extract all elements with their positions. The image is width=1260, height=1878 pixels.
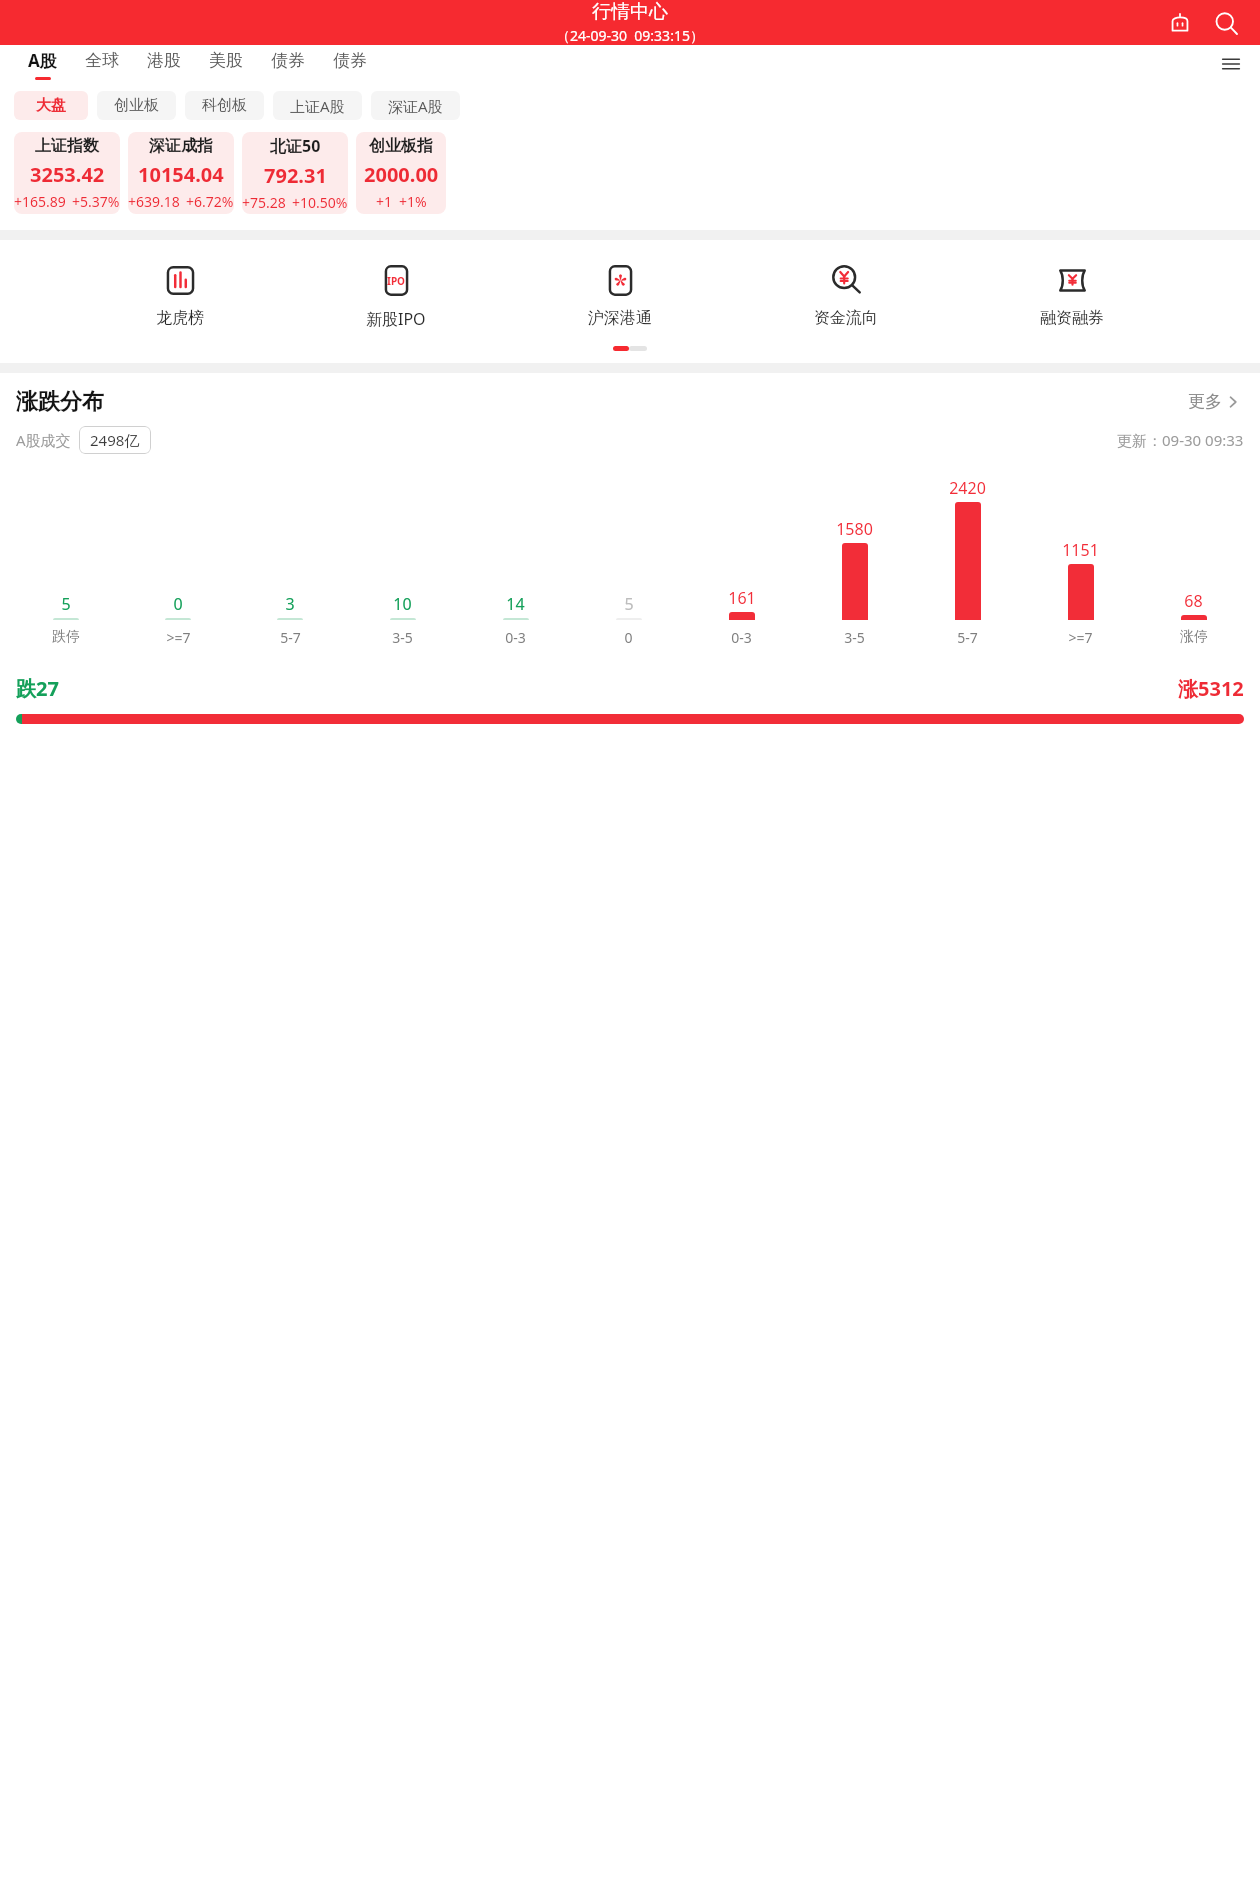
staticText: 更新：09-30 09:33: [1117, 430, 1244, 450]
staticText: 3-5: [392, 628, 413, 647]
staticText: +639.18: [128, 192, 180, 211]
staticText: 龙虎榜: [156, 308, 204, 328]
staticText: 资金流向: [814, 308, 878, 328]
button[interactable]: 上证指数: [14, 132, 120, 214]
staticText: 3-5: [844, 628, 865, 647]
staticText: 涨5312: [1178, 675, 1244, 702]
staticText: 1580: [836, 518, 873, 540]
staticText: 上证A股: [290, 96, 345, 116]
staticText: 2498亿: [90, 430, 140, 450]
staticText: 北证50: [270, 135, 321, 157]
staticText: IPO: [387, 274, 406, 288]
staticText: （24-09-30 09:33:15）: [556, 26, 704, 45]
staticText: +1: [376, 192, 393, 211]
button[interactable]: 债券: [257, 45, 319, 83]
staticText: 0: [624, 628, 633, 647]
button[interactable]: 更多: [1184, 387, 1244, 416]
button[interactable]: 大盘: [14, 91, 88, 120]
staticText: A股成交: [16, 430, 71, 450]
button[interactable]: 美股: [195, 45, 257, 83]
staticText: 沪深港通: [588, 308, 652, 328]
button[interactable]: IPO: [360, 260, 432, 332]
staticText: 创业板指: [369, 136, 433, 156]
staticText: 2000.00: [364, 161, 439, 188]
staticText: 大盘: [36, 96, 66, 115]
staticText: 行情中心: [592, 0, 668, 24]
staticText: 涨停: [1180, 628, 1208, 646]
button[interactable]: 龙虎榜: [150, 260, 210, 330]
staticText: 融资融券: [1040, 308, 1104, 328]
staticText: +75.28: [242, 193, 286, 212]
staticText: >=7: [166, 628, 191, 647]
staticText: 5-7: [280, 628, 301, 647]
staticText: 跌27: [16, 675, 59, 702]
staticText: 0: [173, 593, 183, 615]
staticText: 14: [506, 593, 525, 615]
staticText: 创业板: [114, 96, 159, 115]
staticText: +1%: [399, 192, 427, 211]
staticText: 港股: [147, 50, 181, 71]
staticText: 涨跌分布: [16, 388, 104, 416]
button[interactable]: 债券: [319, 45, 381, 83]
staticText: 5: [624, 593, 634, 615]
button[interactable]: 深证A股: [371, 91, 460, 120]
staticText: 债券: [271, 50, 305, 71]
button[interactable]: 融资融券: [1034, 260, 1110, 330]
staticText: 0-3: [731, 628, 752, 647]
button[interactable]: 创业板: [97, 91, 176, 120]
button[interactable]: 智能助手: [1160, 3, 1200, 43]
staticText: 深证A股: [388, 96, 443, 116]
staticText: 3: [285, 593, 295, 615]
staticText: 10: [393, 593, 412, 615]
staticText: 更多: [1188, 391, 1222, 412]
staticText: +10.50%: [292, 193, 348, 212]
button[interactable]: A股: [14, 45, 71, 83]
staticText: 2420: [949, 477, 986, 499]
button[interactable]: 创业板指: [356, 132, 446, 214]
button[interactable]: 深证成指: [128, 132, 234, 214]
staticText: 10154.04: [138, 161, 224, 188]
staticText: 科创板: [202, 96, 247, 115]
staticText: 792.31: [264, 162, 327, 189]
button[interactable]: 全球: [71, 45, 133, 83]
staticText: 161: [728, 587, 756, 609]
staticText: 美股: [209, 50, 243, 71]
staticText: 1151: [1062, 539, 1099, 561]
staticText: +6.72%: [186, 192, 234, 211]
button[interactable]: 资金流向: [808, 260, 884, 330]
staticText: +5.37%: [72, 192, 120, 211]
staticText: 债券: [333, 50, 367, 71]
button[interactable]: 上证A股: [273, 91, 362, 120]
button[interactable]: 北证50: [242, 132, 348, 214]
staticText: 68: [1184, 590, 1203, 612]
staticText: 5-7: [957, 628, 978, 647]
button[interactable]: 沪深港通: [582, 260, 658, 330]
staticText: 跌停: [52, 628, 80, 646]
staticText: 新股IPO: [366, 308, 426, 330]
staticText: >=7: [1068, 628, 1093, 647]
staticText: 上证指数: [35, 136, 99, 156]
staticText: 3253.42: [30, 161, 105, 188]
button[interactable]: 更多分类: [1214, 47, 1248, 81]
staticText: 0-3: [505, 628, 526, 647]
staticText: 全球: [85, 50, 119, 71]
staticText: +165.89: [14, 192, 66, 211]
button[interactable]: 港股: [133, 45, 195, 83]
button[interactable]: 科创板: [185, 91, 264, 120]
button[interactable]: 搜索: [1206, 3, 1246, 43]
staticText: 深证成指: [149, 136, 213, 156]
staticText: A股: [28, 49, 57, 72]
staticText: 5: [61, 593, 71, 615]
